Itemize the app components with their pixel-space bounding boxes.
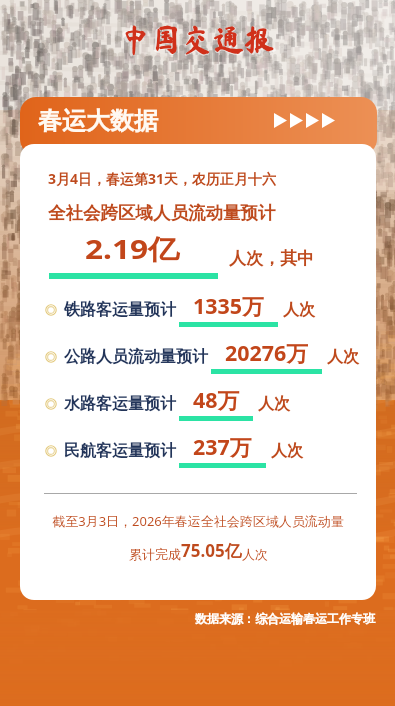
staticText: 人次 <box>283 300 315 320</box>
staticText: 中国交通报 <box>117 24 278 56</box>
staticText: 全社会跨区域人员流动量预计 <box>48 202 276 224</box>
staticText: 春运大数据 <box>38 106 158 136</box>
staticText: 人次 <box>242 546 268 562</box>
staticText: 公路人员流动量预计 <box>64 347 208 367</box>
staticText: 2.19亿 <box>85 230 180 267</box>
staticText: 20276万 <box>225 339 309 368</box>
button[interactable]: 春运大数据 <box>20 97 377 155</box>
staticText: 人次 <box>327 347 359 367</box>
button[interactable]: More <box>274 113 335 128</box>
staticText: 1335万 <box>193 292 264 321</box>
button[interactable]: 水路客运量预计 <box>45 386 376 421</box>
staticText: 累计完成 <box>129 546 181 562</box>
staticText: 3月4日，春运第31天，农历正月十六 <box>48 169 277 188</box>
staticText: 中国交通报 <box>120 24 275 55</box>
staticText: 截至3月3日，2026年春运全社会跨区域人员流动量 <box>20 512 376 530</box>
button[interactable]: 铁路客运量预计 <box>45 292 376 327</box>
staticText: 人次，其中 <box>229 248 314 269</box>
staticText: 237万 <box>193 433 252 462</box>
button[interactable]: 公路人员流动量预计 <box>45 339 376 374</box>
staticText: 水路客运量预计 <box>64 394 176 414</box>
staticText: 75.05亿 <box>181 539 242 562</box>
staticText: 人次 <box>271 441 303 461</box>
button[interactable]: 民航客运量预计 <box>45 433 376 468</box>
staticText: 铁路客运量预计 <box>64 300 176 320</box>
staticText: 数据来源：综合运输春运工作专班 <box>195 611 375 626</box>
staticText: 48万 <box>193 386 240 415</box>
staticText: 人次 <box>258 394 290 414</box>
staticText: 民航客运量预计 <box>64 441 176 461</box>
